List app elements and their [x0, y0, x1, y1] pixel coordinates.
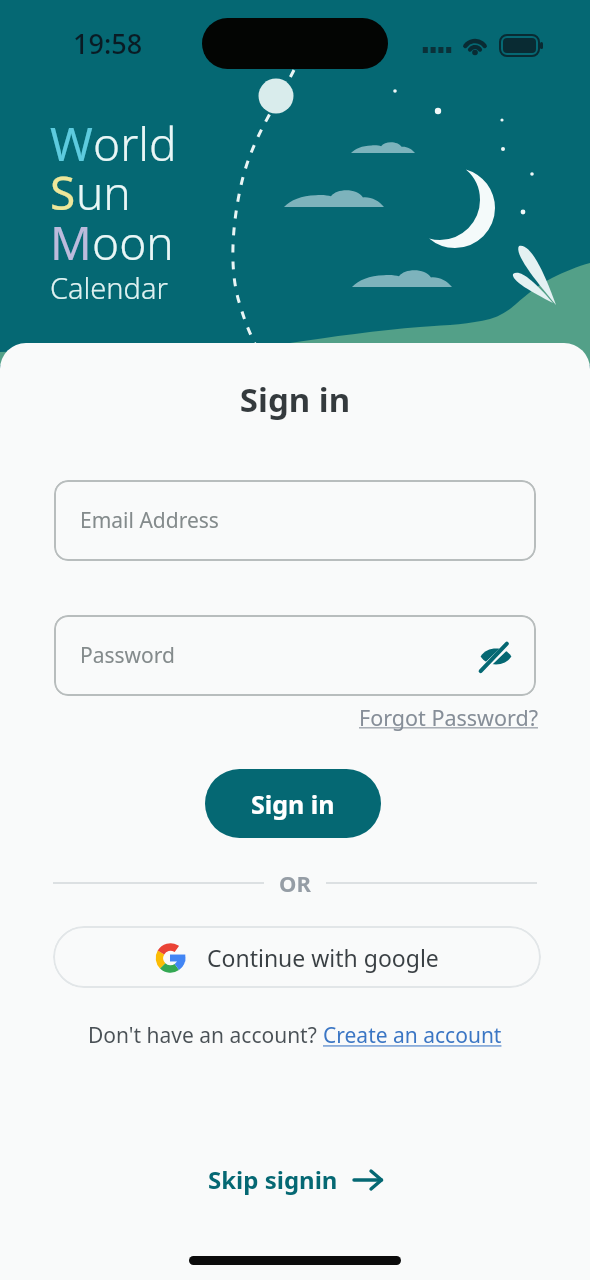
- staticText: oon: [92, 211, 174, 274]
- staticText: un: [76, 161, 131, 224]
- staticText: Continue with google: [207, 942, 439, 973]
- staticText: 19:58: [73, 25, 143, 62]
- button[interactable]: Continue with google: [53, 926, 541, 988]
- button[interactable]: Email Address: [54, 480, 536, 561]
- staticText: Email Address: [80, 506, 219, 535]
- staticText: Skip signin: [208, 1163, 338, 1196]
- staticText: S: [50, 161, 76, 224]
- button[interactable]: Create an account: [323, 1021, 502, 1050]
- staticText: Create an account: [323, 1021, 502, 1050]
- staticText: M: [50, 211, 92, 274]
- button[interactable]: Skip signin: [200, 1157, 391, 1202]
- staticText: Calendar: [50, 268, 168, 307]
- staticText: Password: [80, 641, 175, 670]
- staticText: Forgot Password?: [359, 703, 538, 732]
- staticText: Don't have an account?: [88, 1021, 323, 1050]
- staticText: OR: [279, 868, 311, 898]
- staticText: Sign in: [251, 787, 335, 821]
- button[interactable]: Password: [54, 615, 536, 696]
- button[interactable]: Forgot Password?: [355, 699, 542, 736]
- staticText: W: [50, 112, 93, 175]
- button[interactable]: Sign in: [205, 769, 381, 838]
- staticText: orld: [93, 112, 177, 175]
- button[interactable]: Show password: [471, 631, 521, 681]
- staticText: Sign in: [0, 377, 590, 422]
